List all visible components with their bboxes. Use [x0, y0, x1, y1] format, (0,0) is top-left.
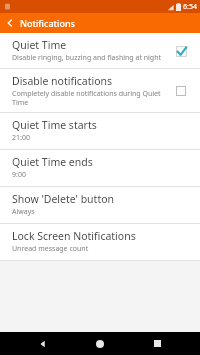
staticText: Quiet Time	[12, 38, 67, 52]
button[interactable]: Quiet Time	[0, 33, 200, 68]
staticText: Quiet Time ends	[12, 155, 93, 169]
staticText: Lock Screen Notifications	[12, 229, 136, 243]
button[interactable]: Recent apps	[143, 332, 171, 355]
staticText: Notifications	[20, 17, 75, 29]
staticText: 9:00	[12, 170, 26, 180]
staticText: Always	[12, 207, 35, 217]
button[interactable]: Show 'Delete' button	[0, 187, 200, 223]
button[interactable]: Lock Screen Notifications	[0, 224, 200, 260]
button[interactable]: Unchecked	[170, 80, 192, 102]
button[interactable]: Quiet Time ends	[0, 150, 200, 186]
button[interactable]: Quiet Time starts	[0, 113, 200, 149]
button[interactable]: Back	[29, 332, 57, 355]
button[interactable]: Disable notifications	[0, 69, 200, 112]
staticText: Disable notifications	[12, 74, 113, 88]
button[interactable]: Home	[86, 332, 114, 355]
staticText: Quiet Time starts	[12, 118, 97, 132]
button[interactable]: Checked	[170, 40, 192, 62]
staticText: Completely disable notifications during …	[12, 89, 164, 107]
staticText: Show 'Delete' button	[12, 192, 115, 206]
staticText: Unread message count	[12, 244, 89, 254]
staticText: 21:00	[12, 133, 30, 143]
button[interactable]: Back	[0, 13, 20, 33]
staticText: Disable ringing, buzzing and flashing at…	[12, 53, 162, 63]
staticText: 6:54	[183, 2, 197, 12]
